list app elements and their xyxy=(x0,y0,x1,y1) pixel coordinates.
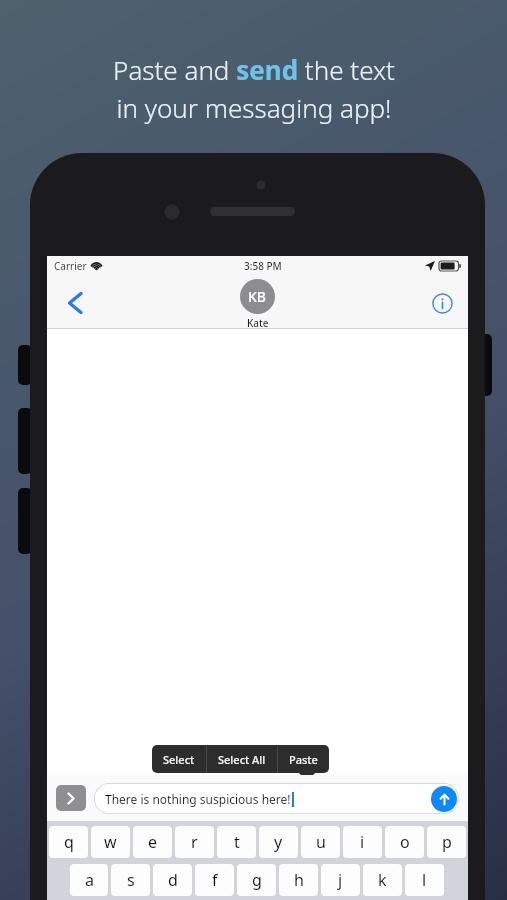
staticText: Carrier xyxy=(54,259,87,273)
button[interactable]: y xyxy=(259,826,298,858)
staticText: u xyxy=(316,831,326,853)
button[interactable]: l xyxy=(405,864,444,896)
staticText: w xyxy=(104,831,117,853)
staticText: f xyxy=(212,869,218,891)
button[interactable]: Paste xyxy=(278,745,329,773)
button[interactable]: There is nothing suspicious here! xyxy=(94,783,459,814)
button[interactable]: p xyxy=(427,826,466,858)
button[interactable]: q xyxy=(49,826,88,858)
staticText: j xyxy=(338,869,343,891)
button[interactable]: Apps xyxy=(56,785,86,811)
staticText: o xyxy=(400,831,410,853)
button[interactable]: Details xyxy=(426,287,458,319)
staticText: k xyxy=(378,869,387,891)
button[interactable]: s xyxy=(111,864,150,896)
staticText: d xyxy=(168,869,178,891)
button[interactable]: a xyxy=(70,864,108,896)
button[interactable]: o xyxy=(385,826,424,858)
button[interactable]: h xyxy=(279,864,318,896)
button[interactable]: Select All xyxy=(207,745,277,773)
staticText: There is nothing suspicious here! xyxy=(105,791,291,807)
button[interactable]: j xyxy=(321,864,360,896)
button[interactable]: e xyxy=(133,826,172,858)
staticText: y xyxy=(274,831,283,853)
staticText: a xyxy=(85,869,94,891)
staticText: l xyxy=(422,869,427,891)
staticText: t xyxy=(234,831,240,853)
staticText: Paste xyxy=(289,752,318,767)
button[interactable]: f xyxy=(195,864,234,896)
staticText: e xyxy=(148,831,158,853)
button[interactable]: r xyxy=(175,826,214,858)
button[interactable]: Back xyxy=(57,286,91,320)
staticText: g xyxy=(252,869,262,891)
button[interactable]: Select xyxy=(152,745,206,773)
button[interactable]: t xyxy=(217,826,256,858)
staticText: i xyxy=(360,831,365,853)
staticText: r xyxy=(191,831,198,853)
button[interactable]: w xyxy=(91,826,130,858)
staticText: Kate xyxy=(247,316,269,330)
staticText: p xyxy=(442,831,452,853)
staticText: 3:58 PM xyxy=(244,259,282,273)
staticText: Paste and send the text in your messagin… xyxy=(113,52,395,125)
staticText: h xyxy=(294,869,304,891)
button[interactable]: g xyxy=(237,864,276,896)
button[interactable]: KB xyxy=(240,279,275,330)
staticText: s xyxy=(127,869,135,891)
staticText: KB xyxy=(248,287,267,306)
staticText: q xyxy=(64,831,74,853)
button[interactable]: Send xyxy=(431,786,457,812)
button[interactable]: i xyxy=(343,826,382,858)
staticText: Select All xyxy=(218,752,266,767)
button[interactable]: k xyxy=(363,864,402,896)
button[interactable]: u xyxy=(301,826,340,858)
staticText: Select xyxy=(163,752,195,767)
button[interactable]: d xyxy=(153,864,192,896)
